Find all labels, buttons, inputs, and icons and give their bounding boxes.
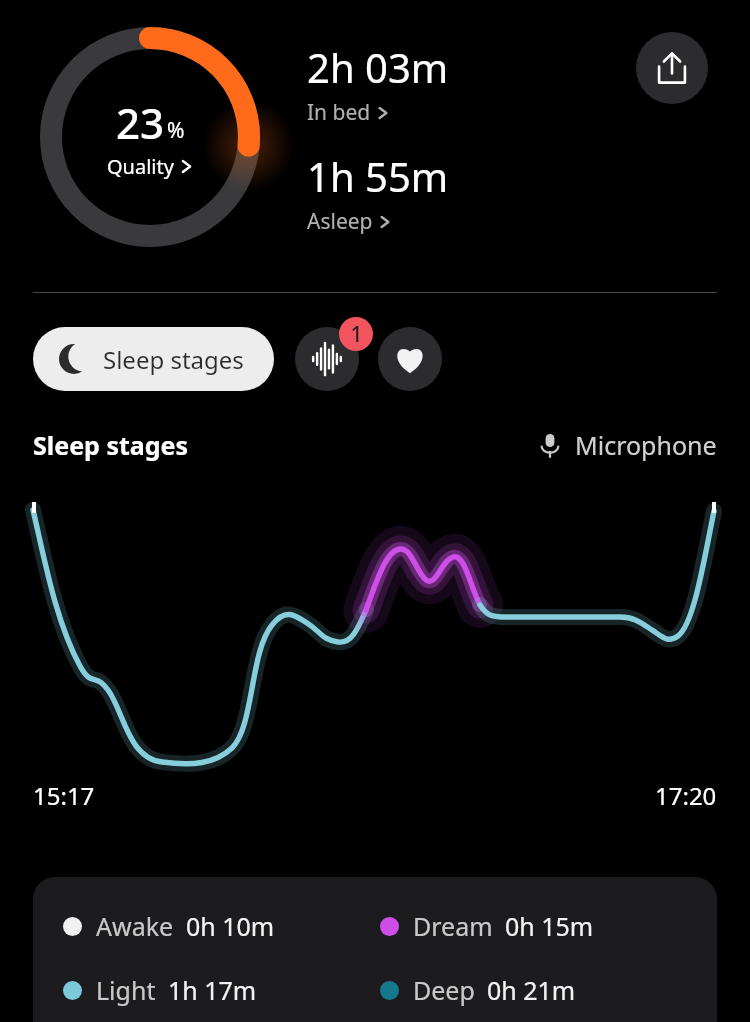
button[interactable]: 1h 55m [307, 149, 449, 236]
staticText: 1h 17m [168, 973, 257, 1007]
button[interactable]: Share [636, 32, 708, 104]
staticText: Awake [96, 909, 174, 943]
button[interactable]: 23 [40, 27, 260, 247]
button[interactable]: Sleep stages [33, 327, 274, 391]
staticText: 0h 10m [186, 909, 275, 943]
button[interactable] [0, 495, 750, 780]
staticText: 15:17 [33, 779, 95, 812]
button[interactable]: Heart rate [378, 327, 442, 391]
staticText: Sleep stages [103, 343, 244, 376]
staticText: % [167, 116, 185, 145]
button[interactable]: Microphone [537, 428, 717, 462]
staticText: 0h 15m [505, 909, 594, 943]
button[interactable]: Awake [33, 877, 717, 1022]
staticText: Sleep stages [33, 428, 189, 462]
button[interactable]: 2h 03m [307, 40, 449, 127]
button[interactable]: Sleep recordings [295, 327, 359, 391]
staticText: Deep [413, 973, 475, 1007]
staticText: 0h 21m [487, 973, 576, 1007]
staticText: 2h 03m [307, 40, 449, 94]
staticText: In bed [307, 98, 371, 127]
staticText: 1 [350, 320, 363, 349]
staticText: 23 [116, 94, 165, 151]
staticText: 17:20 [655, 779, 717, 812]
staticText: Microphone [575, 428, 717, 462]
staticText: Dream [413, 909, 493, 943]
staticText: Asleep [307, 207, 373, 236]
staticText: 1h 55m [307, 149, 449, 203]
staticText: Quality [107, 153, 174, 180]
staticText: Light [96, 973, 156, 1007]
